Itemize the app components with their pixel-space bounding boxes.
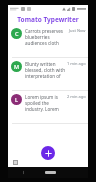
button[interactable]: M — [8, 58, 88, 90]
staticText: Blunty written horse entitrussed the — [25, 61, 65, 67]
staticText: audiences cloth and told it. Effected do… — [25, 40, 67, 46]
staticText: Just Now — [69, 28, 86, 33]
button[interactable]: Compose new message — [41, 146, 55, 160]
button[interactable]: L — [8, 91, 88, 123]
staticText: 2 min ago — [67, 94, 86, 99]
staticText: L — [15, 96, 18, 103]
staticText: Lorem ipsum is simply directly — [25, 94, 65, 100]
staticText: industry. Lorem ipsumhas been th. — [25, 106, 65, 112]
staticText: blueberries sacrificial happiness and — [25, 34, 67, 40]
button[interactable]: Keyboard — [11, 158, 19, 166]
staticText: Tomato Typewriter — [17, 15, 79, 24]
staticText: Carrots preserves the reader with — [25, 28, 67, 34]
staticText: M — [14, 63, 20, 70]
staticText: interpretation of what the blessed i. — [25, 73, 65, 79]
staticText: C — [15, 30, 19, 37]
button[interactable]: C — [8, 25, 88, 57]
staticText: blessed, cloth with forest hat out, — [25, 67, 65, 73]
staticText: 1 min ago — [67, 61, 86, 66]
button[interactable]: Back — [21, 170, 26, 175]
button[interactable]: Home — [45, 171, 56, 174]
staticText: spoiled the printing and typesetting — [25, 100, 65, 106]
